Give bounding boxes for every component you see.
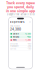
staticText: -1,200 xyxy=(24,39,30,41)
staticText: -860 xyxy=(27,43,31,45)
staticText: 24,380 xyxy=(10,28,21,31)
button[interactable]: Rent xyxy=(10,39,31,41)
staticText: Groceries xyxy=(10,43,18,45)
staticText: -180 xyxy=(27,48,31,50)
button[interactable]: Transport xyxy=(10,45,31,48)
staticText: Coffee xyxy=(10,48,16,50)
staticText: Budgets that actually stick xyxy=(6,13,34,16)
staticText: Rent xyxy=(13,39,17,41)
staticText: Salary xyxy=(13,32,19,35)
button[interactable]: Refund xyxy=(10,36,31,38)
staticText: Transport xyxy=(10,45,19,48)
button[interactable]: Salary xyxy=(10,32,31,35)
button[interactable]: Groceries xyxy=(10,43,31,45)
staticText: +420 xyxy=(26,36,30,38)
staticText: This month xyxy=(10,25,20,27)
staticText: -240 xyxy=(27,45,31,48)
staticText: Refund xyxy=(13,36,19,38)
staticText: Expenses xyxy=(10,20,24,24)
staticText: Track every rupee xyxy=(6,1,35,5)
staticText: +3,000 xyxy=(24,32,30,35)
button[interactable]: Coffee xyxy=(10,48,31,50)
staticText: you spend, daily xyxy=(7,5,34,9)
staticText: in one simple app xyxy=(6,9,35,13)
